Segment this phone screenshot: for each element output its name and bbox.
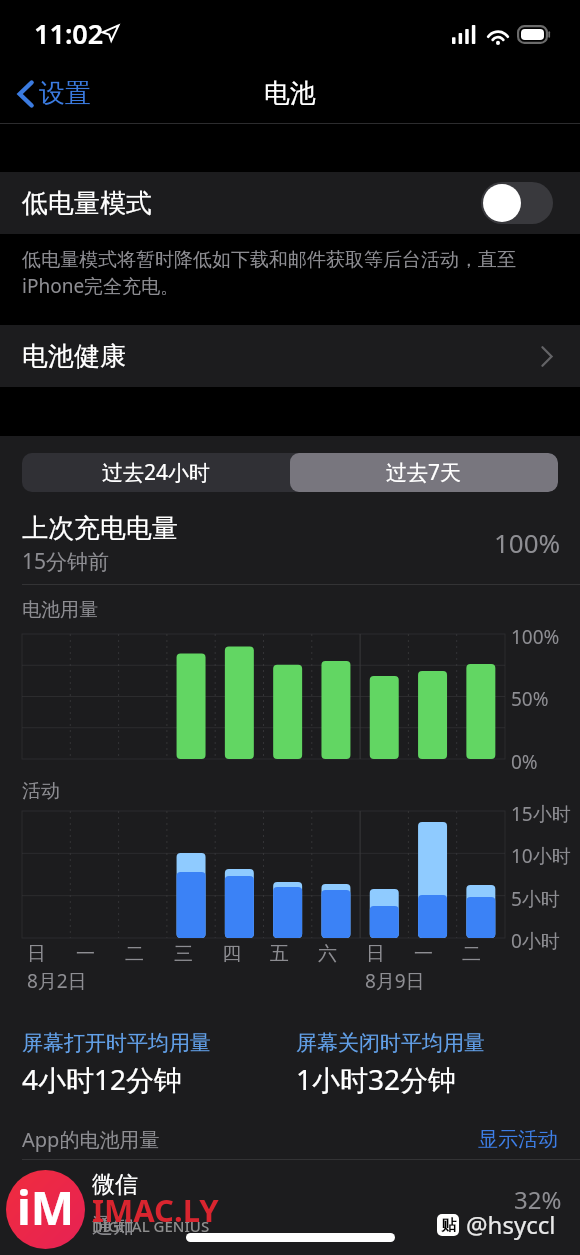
staticText: 8月2日 [27, 968, 87, 994]
staticText: 三 [174, 942, 193, 966]
staticText: iM [17, 1176, 75, 1239]
staticText: 显示活动 [478, 1127, 558, 1152]
staticText: 32% [514, 1183, 562, 1216]
button[interactable]: 设置 [0, 69, 103, 118]
staticText: 屏幕打开时平均用量 [22, 1030, 211, 1056]
staticText: 五 [270, 942, 289, 966]
button[interactable]: 过去24小时 [22, 453, 290, 492]
staticText: 100% [511, 624, 560, 650]
staticText: 贴 [441, 1216, 456, 1235]
staticText: 二 [125, 942, 144, 966]
staticText: 四 [222, 942, 241, 966]
staticText: 活动 [22, 779, 60, 803]
staticText: 上次充电电量 [22, 512, 178, 545]
staticText: 11:02 [34, 15, 104, 52]
staticText: 电池用量 [22, 598, 98, 622]
staticText: 0% [511, 749, 538, 775]
staticText: 微信 [92, 1170, 138, 1199]
staticText: @hsyccl [466, 1208, 556, 1241]
staticText: 过去7天 [386, 458, 462, 487]
button[interactable]: 显示活动 [478, 1120, 580, 1159]
button[interactable]: 电池健康 [0, 325, 580, 387]
staticText: 设置 [39, 77, 91, 110]
staticText: 通知 [92, 1213, 134, 1239]
button[interactable]: 低电量模式 [0, 172, 580, 234]
staticText: 15分钟前 [22, 547, 110, 576]
staticText: 日 [27, 942, 46, 966]
staticText: 电池健康 [22, 340, 126, 373]
staticText: 日 [366, 942, 385, 966]
staticText: 0小时 [511, 928, 560, 954]
staticText: 50% [511, 686, 549, 712]
staticText: 六 [318, 942, 337, 966]
staticText: 低电量模式 [22, 187, 152, 220]
staticText: 一 [76, 942, 95, 966]
button[interactable]: 低电量模式开关 [481, 182, 553, 224]
staticText: IMAC.LY [92, 1189, 219, 1231]
staticText: 屏幕关闭时平均用量 [296, 1030, 485, 1056]
button[interactable]: 过去7天 [290, 453, 558, 492]
staticText: 5小时 [511, 886, 560, 912]
staticText: 过去24小时 [102, 458, 211, 487]
staticText: 1小时32分钟 [296, 1060, 457, 1098]
staticText: App的电池用量 [22, 1126, 160, 1153]
staticText: 100% [494, 525, 561, 560]
button[interactable]: 微信 [0, 1160, 580, 1255]
staticText: 一 [414, 942, 433, 966]
staticText: 二 [462, 942, 481, 966]
staticText: 8月9日 [365, 968, 425, 994]
staticText: 15小时 [511, 801, 571, 827]
staticText: 4小时12分钟 [22, 1060, 183, 1098]
staticText: 10小时 [511, 843, 571, 869]
staticText: 低电量模式将暂时降低如下载和邮件获取等后台活动，直至 iPhone完全充电。 [22, 248, 516, 299]
staticText: 电池 [264, 77, 316, 110]
staticText: DIGITAL GENIUS [92, 1216, 210, 1236]
